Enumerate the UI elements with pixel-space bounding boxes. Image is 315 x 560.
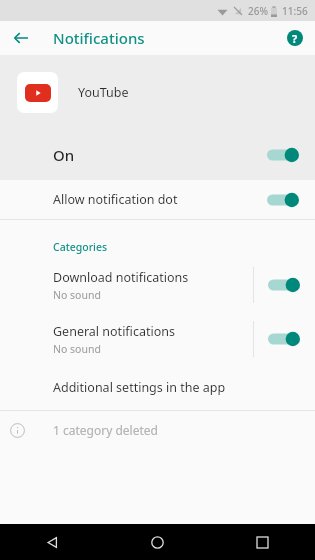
button[interactable]: Recent apps <box>210 524 315 560</box>
button[interactable]: Back <box>6 23 36 53</box>
staticText: YouTube <box>78 84 129 101</box>
button[interactable]: Toggle General notifications <box>254 320 315 358</box>
staticText: ? <box>292 31 298 46</box>
staticText: 26% <box>248 4 268 18</box>
button[interactable]: Download notifications <box>0 266 315 304</box>
button[interactable]: Toggle Download notifications <box>254 266 315 304</box>
button[interactable]: General notifications <box>0 320 315 358</box>
button[interactable]: Home <box>105 524 210 560</box>
staticText: No sound <box>53 288 101 302</box>
staticText: Categories <box>53 240 108 254</box>
staticText: General notifications <box>53 323 175 340</box>
staticText: On <box>53 145 267 165</box>
button[interactable]: On <box>0 130 315 180</box>
staticText: 11:56 <box>282 4 308 18</box>
staticText: Allow notification dot <box>53 191 267 208</box>
button[interactable]: Back <box>0 524 105 560</box>
button[interactable]: Additional settings in the app <box>0 372 315 402</box>
staticText: Download notifications <box>53 269 189 286</box>
staticText: 1 category deleted <box>53 422 158 438</box>
staticText: No sound <box>53 342 101 356</box>
button[interactable]: Allow notification dot <box>0 180 315 219</box>
button[interactable]: Help <box>282 25 308 51</box>
staticText: Additional settings in the app <box>53 379 226 396</box>
staticText: Notifications <box>53 28 145 48</box>
